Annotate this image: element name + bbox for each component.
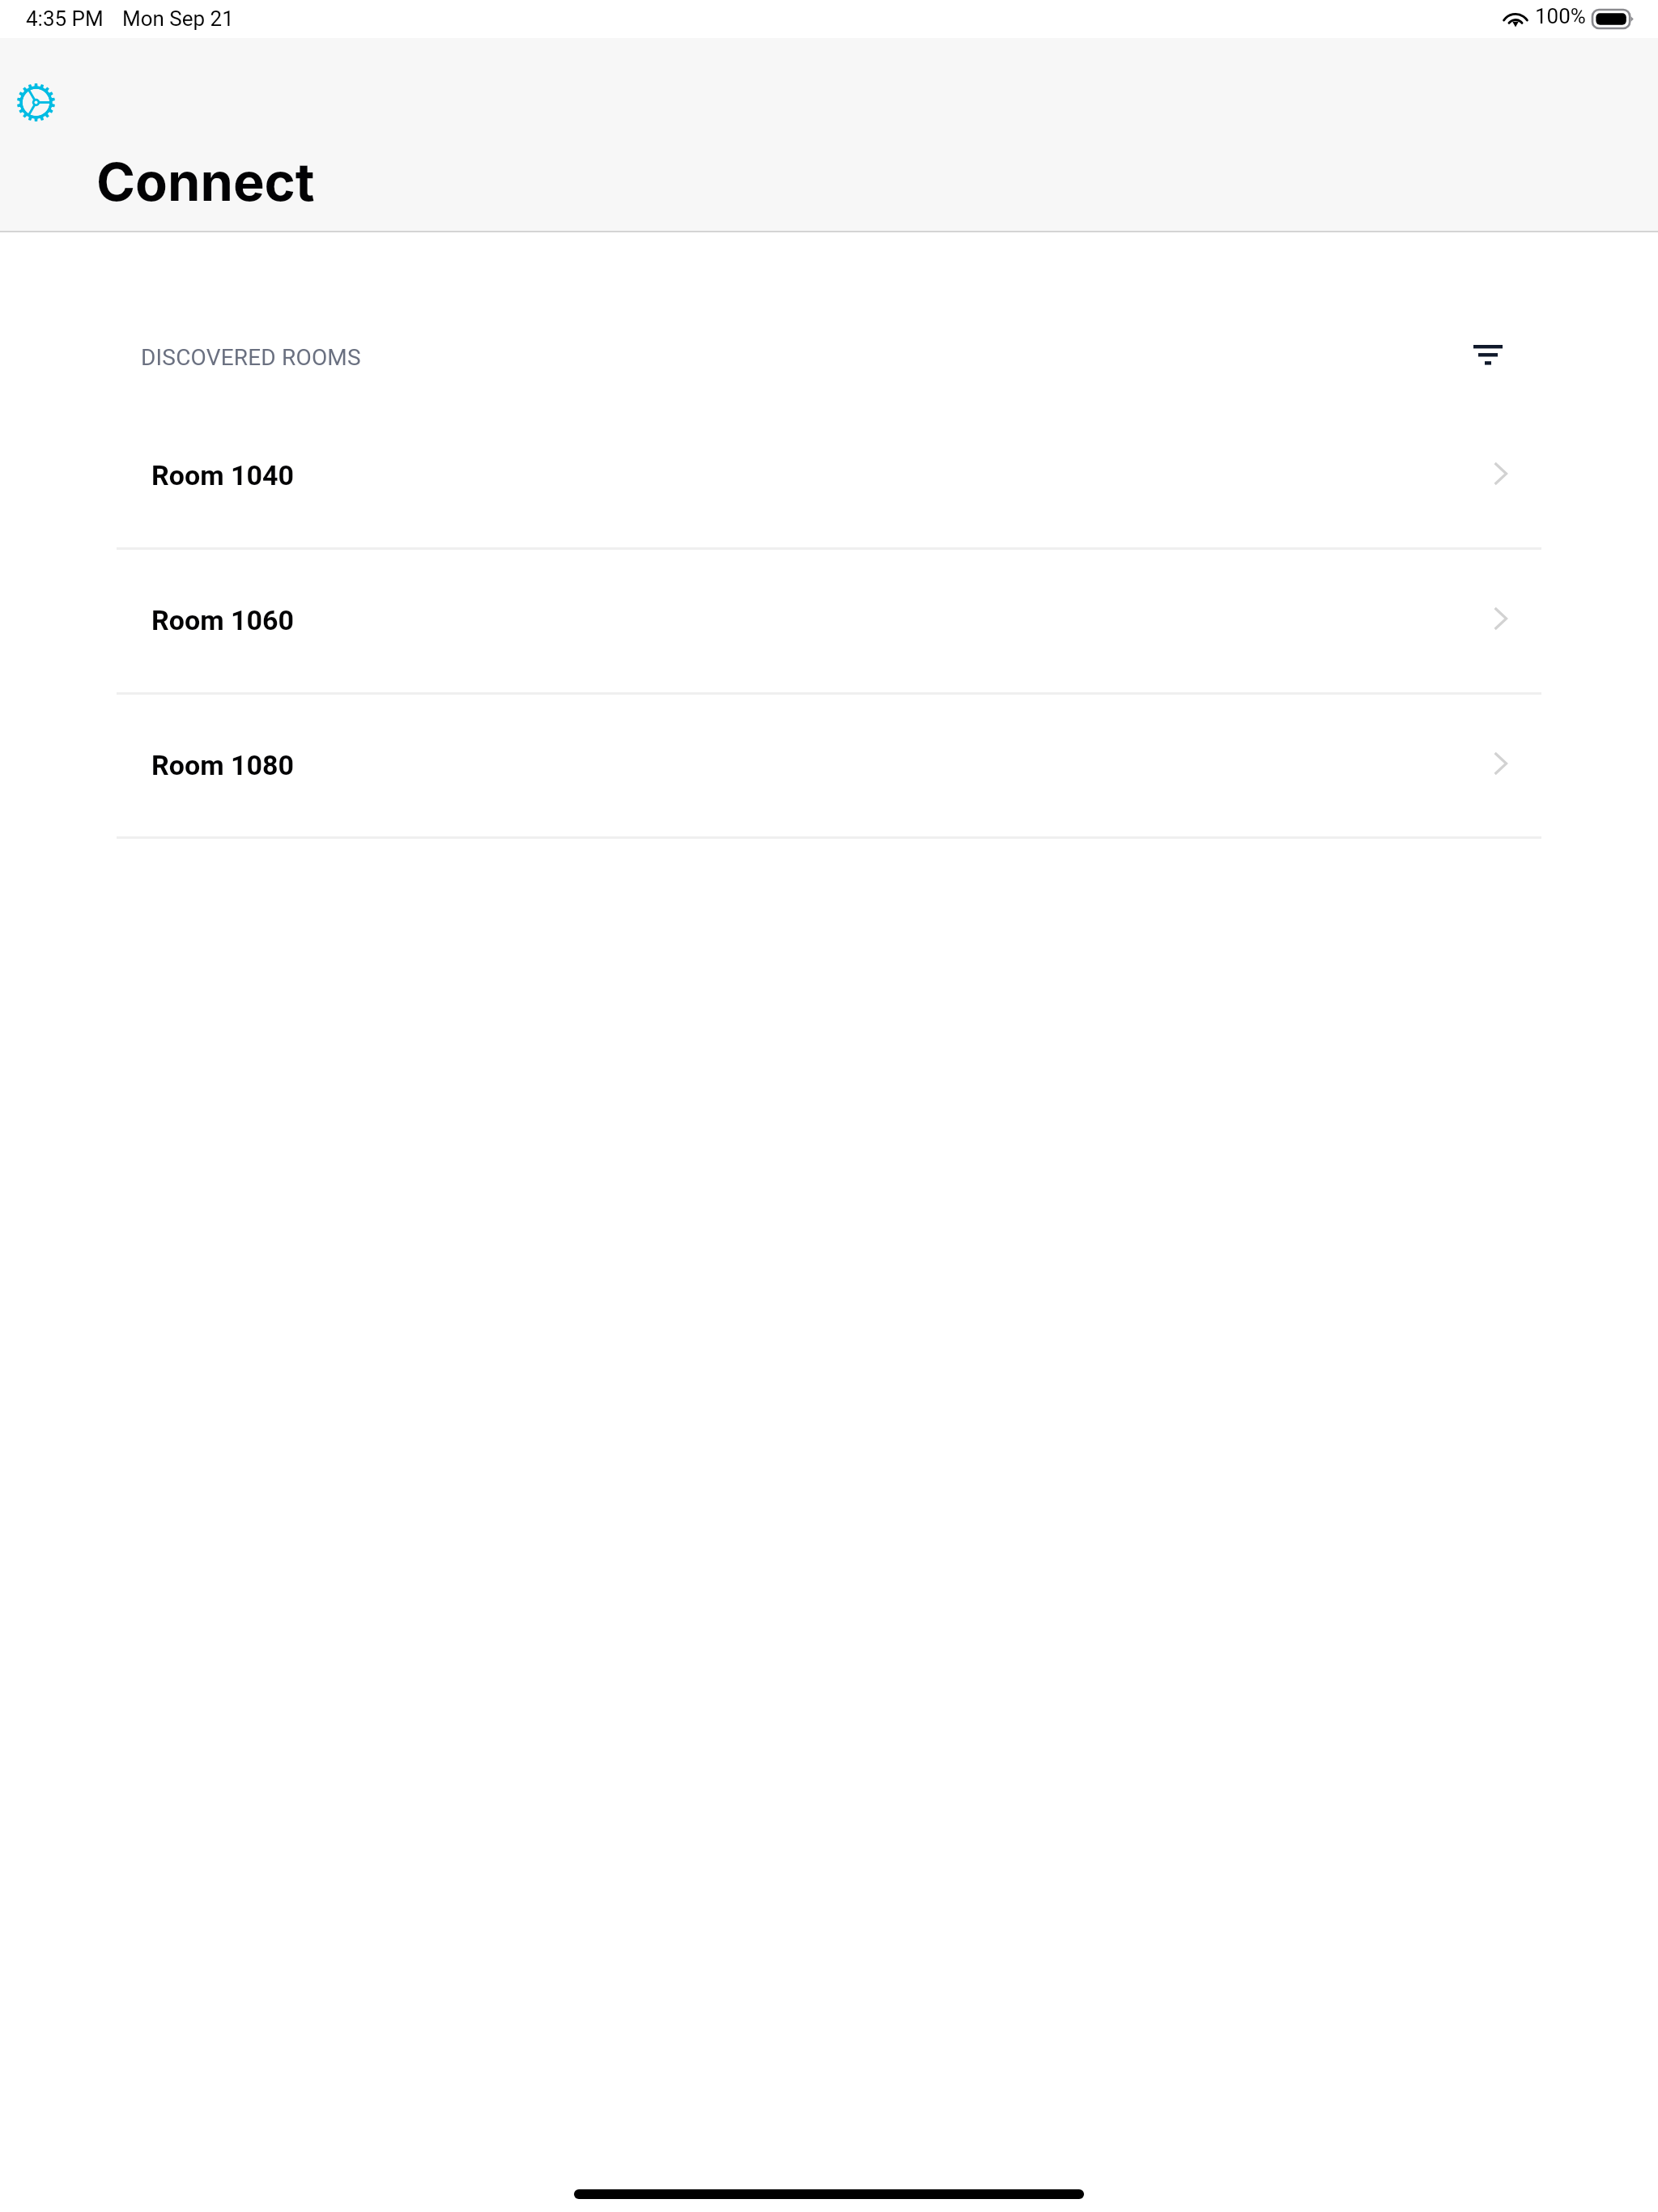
staticText: Room 1040 xyxy=(151,459,295,491)
button[interactable]: Room 1080 xyxy=(0,692,1658,836)
staticText: DISCOVERED ROOMS xyxy=(141,344,361,371)
staticText: Mon Sep 21 xyxy=(122,6,234,31)
staticText: Room 1060 xyxy=(151,604,295,636)
button[interactable]: Filter xyxy=(1449,316,1527,393)
button[interactable]: Room 1040 xyxy=(0,402,1658,547)
staticText: Connect xyxy=(96,150,315,214)
staticText: 4:35 PM xyxy=(26,6,104,31)
button[interactable]: Settings xyxy=(0,63,74,141)
button[interactable]: Room 1060 xyxy=(0,547,1658,691)
staticText: 100% xyxy=(1535,4,1586,28)
staticText: Room 1080 xyxy=(151,749,295,781)
